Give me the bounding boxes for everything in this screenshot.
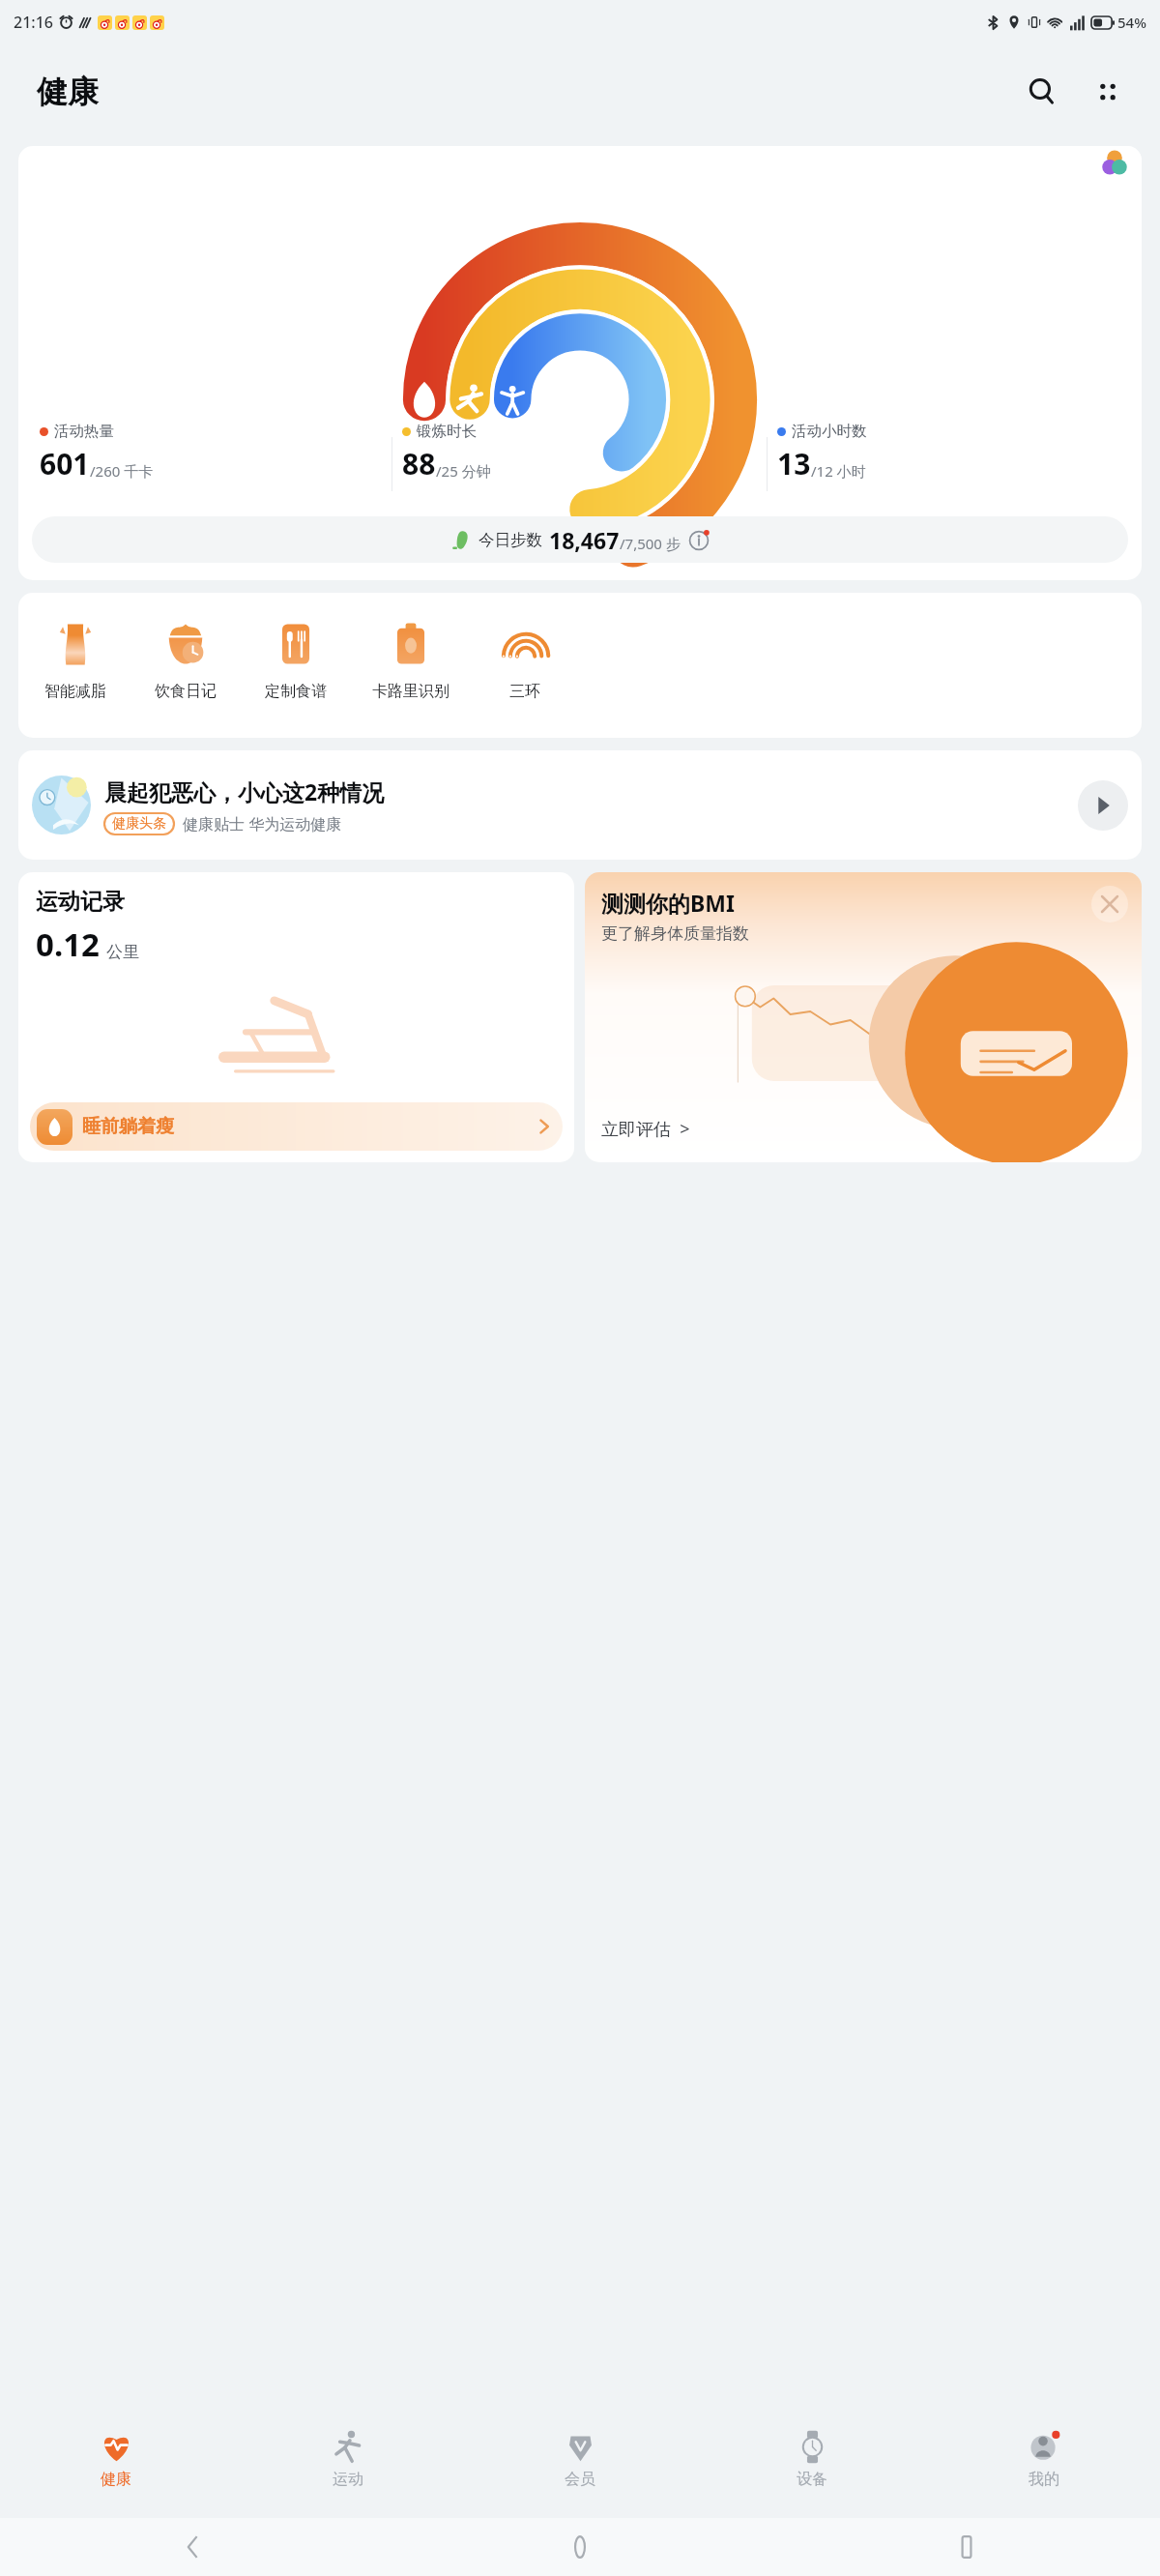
button[interactable]: 今日步数 [32,516,1128,563]
button[interactable]: Home [387,2518,773,2576]
button[interactable]: 定制食谱 [241,593,351,738]
button[interactable]: 我的 [928,2400,1160,2518]
staticText: 健康贴士 华为运动健康 [183,813,342,834]
button[interactable]: 卡路里识别 [351,593,471,738]
staticText: 定制食谱 [265,682,327,701]
button[interactable]: Health profile [1087,146,1142,179]
button[interactable]: Back [0,2518,387,2576]
staticText: 公里 [106,942,139,962]
button[interactable]: 运动 [232,2400,464,2518]
button[interactable]: 运动记录 [18,872,574,1162]
staticText: 更了解身体质量指数 [601,923,749,944]
staticText: 三环 [509,682,540,701]
button[interactable]: More options [1081,65,1135,119]
button[interactable]: 测测你的BMI [585,872,1142,1162]
staticText: 睡前躺着瘦 [82,1115,174,1138]
button[interactable]: 睡前躺着瘦 [30,1102,563,1151]
staticText: 今日步数 [478,530,542,550]
staticText: 健康 [37,73,99,111]
staticText: 饮食日记 [155,682,217,701]
staticText: 活动热量 [54,422,114,441]
button[interactable]: 三环 [471,593,579,738]
staticText: 晨起犯恶心，小心这2种情况 [104,776,385,806]
staticText: 健康头条 [112,815,166,833]
staticText: 测测你的BMI [601,888,735,918]
button[interactable]: 健康 [0,2400,232,2518]
button[interactable]: Play [1078,780,1128,831]
button[interactable]: 设备 [696,2400,928,2518]
staticText: 健康 [101,2470,131,2489]
staticText: 立即评估 > [601,1117,690,1141]
staticText: 601 [40,444,90,483]
staticText: 设备 [797,2470,827,2489]
staticText: 88 [402,444,436,483]
staticText: 54% [1117,13,1146,32]
button[interactable]: 活动热量 [18,146,1142,580]
staticText: 运动 [333,2470,363,2489]
staticText: /25 分钟 [436,461,491,481]
staticText: 活动小时数 [792,422,867,441]
staticText: 运动记录 [36,888,125,916]
button[interactable]: 晨起犯恶心，小心这2种情况 [18,750,1142,860]
button[interactable]: 智能减脂 [20,593,130,738]
staticText: 我的 [1029,2470,1059,2489]
button[interactable]: Close [1091,886,1128,922]
staticText: 智能减脂 [44,682,106,701]
staticText: 21:16 [14,12,53,33]
staticText: 0.12 [36,922,100,966]
staticText: 锻炼时长 [417,422,477,441]
staticText: /12 小时 [811,461,866,481]
button[interactable]: 饮食日记 [130,593,241,738]
staticText: /7,500 步 [620,534,681,553]
button[interactable]: Recents [773,2518,1160,2576]
button[interactable]: 会员 [464,2400,696,2518]
staticText: /260 千卡 [90,461,154,481]
staticText: 卡路里识别 [372,682,449,701]
button[interactable]: Search [1015,65,1069,119]
staticText: 13 [777,444,811,483]
staticText: 18,467 [549,525,620,555]
staticText: 会员 [565,2470,595,2489]
